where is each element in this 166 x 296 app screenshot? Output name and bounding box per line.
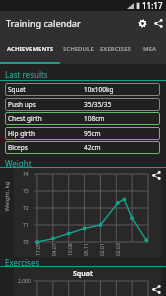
button[interactable]: Hip girth [5, 127, 160, 140]
staticText: 11:17 [142, 0, 163, 11]
button[interactable]: SCHEDULE [60, 35, 96, 64]
staticText: 108cm [84, 114, 105, 123]
staticText: 05.11 [83, 243, 90, 256]
staticText: Push ups [8, 100, 36, 109]
staticText: 2,000 [18, 278, 31, 285]
staticText: 72 [23, 205, 29, 212]
staticText: 04.07 [51, 243, 58, 256]
button[interactable]: Squat [5, 83, 160, 96]
staticText: Squat [8, 85, 26, 94]
button[interactable]: Share [150, 15, 166, 31]
staticText: 70 [23, 239, 29, 246]
staticText: Weight, kg [2, 180, 10, 211]
staticText: 42cm [84, 143, 101, 152]
button[interactable]: Push ups [5, 98, 160, 111]
staticText: 95cm [84, 129, 101, 138]
staticText: Squat [73, 269, 94, 279]
staticText: Exercises [5, 257, 40, 267]
staticText: MEA [143, 45, 157, 53]
staticText: 74 [23, 171, 29, 178]
staticText: Hip girth [8, 129, 35, 138]
button[interactable]: Settings [134, 15, 150, 31]
staticText: 17.05 [35, 243, 42, 256]
staticText: 10x100kg [84, 85, 114, 94]
staticText: Biceps [8, 143, 28, 152]
button[interactable]: Chest girth [5, 112, 160, 125]
staticText: SCHEDULE [63, 45, 94, 53]
button[interactable]: EXERCISES [96, 35, 134, 64]
staticText: Last results [5, 69, 48, 80]
staticText: 02.03 [115, 243, 122, 256]
staticText: EXERCISES [100, 45, 131, 53]
staticText: Weight [5, 158, 32, 168]
staticText: ACHIEVEMENTS [7, 45, 54, 53]
button[interactable]: Share weight chart [150, 169, 162, 181]
button[interactable]: ACHIEVEMENTS [0, 35, 60, 64]
staticText: 02.01 [99, 243, 106, 256]
staticText: Training calendar [6, 17, 81, 29]
button[interactable]: MEA [134, 35, 166, 64]
staticText: 73 [23, 188, 29, 195]
staticText: Chest girth [8, 114, 42, 123]
button[interactable]: Biceps [5, 141, 160, 154]
staticText: 35/35/35 [84, 100, 112, 109]
button[interactable]: Share exercise chart [150, 283, 162, 295]
staticText: 10.08 [67, 243, 74, 256]
staticText: 71 [23, 222, 29, 229]
